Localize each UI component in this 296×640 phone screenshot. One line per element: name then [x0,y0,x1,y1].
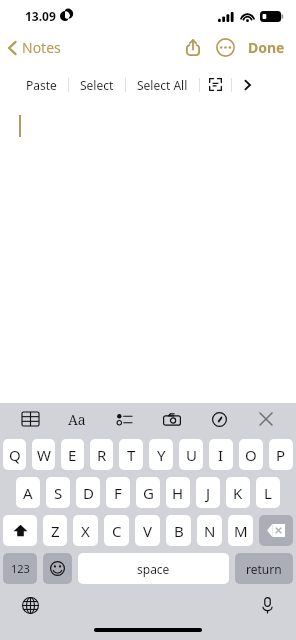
staticText: Select [80,77,114,93]
staticText: Q [9,445,21,465]
button[interactable]: E [61,439,84,470]
staticText: Notes [22,38,61,57]
button[interactable]: Done [243,35,296,60]
button[interactable]: Q [3,439,26,470]
staticText: 13.09 [25,8,56,24]
button[interactable]: R [90,439,113,470]
button[interactable]: Next keyboard [18,593,43,618]
button[interactable]: Emoji [43,553,72,584]
staticText: B [174,521,184,541]
staticText: W [37,445,51,465]
staticText: K [233,483,243,503]
button[interactable]: D [76,477,100,508]
staticText: J [206,483,211,503]
button[interactable]: space [78,553,229,584]
button[interactable]: Select All [126,71,199,98]
staticText: U [186,445,197,465]
button[interactable]: B [166,515,191,546]
button[interactable]: H [166,477,190,508]
staticText: E [68,445,77,465]
button[interactable]: Markup [202,404,236,434]
staticText: Z [51,521,60,541]
staticText: D [83,483,94,503]
button[interactable]: Close keyboard [249,404,283,434]
button[interactable]: Shift [3,515,37,546]
staticText: V [143,521,153,541]
button[interactable]: Scan text [200,71,231,98]
button[interactable]: I [209,439,233,470]
button[interactable]: P [269,439,293,470]
button[interactable]: S [46,477,70,508]
staticText: R [97,445,107,465]
button[interactable]: F [106,477,130,508]
staticText: N [204,521,216,541]
staticText: Aa [68,410,86,429]
button[interactable]: Z [43,515,67,546]
button[interactable]: Dictation [257,593,278,618]
button[interactable]: Share [178,36,208,59]
button[interactable]: return [235,553,293,584]
staticText: I [218,445,224,465]
button[interactable]: Table [13,404,47,434]
button[interactable]: More options [208,35,243,60]
button[interactable]: A [16,477,40,508]
staticText: S [54,483,63,503]
staticText: O [245,445,257,465]
staticText: P [276,445,286,465]
button[interactable]: Camera [155,404,189,434]
staticText: T [127,445,136,465]
button[interactable]: N [197,515,222,546]
button[interactable]: X [73,515,98,546]
staticText: Paste [26,77,57,93]
staticText: G [143,483,154,503]
button[interactable]: L [256,477,280,508]
staticText: M [234,521,248,541]
button[interactable]: G [136,477,160,508]
button[interactable]: V [135,515,160,546]
staticText: Y [157,445,166,465]
staticText: space [137,561,170,577]
staticText: X [81,521,90,541]
button[interactable]: W [32,439,55,470]
button[interactable]: J [196,477,220,508]
staticText: Select All [137,77,188,93]
button[interactable]: O [239,439,263,470]
button[interactable]: Notes [0,35,69,60]
staticText: H [172,483,184,503]
staticText: F [114,483,122,503]
button[interactable]: 123 [3,553,37,584]
button[interactable]: Y [149,439,173,470]
button[interactable]: T [119,439,143,470]
button[interactable]: Checklist [107,404,141,434]
button[interactable]: Paste [15,71,68,98]
button[interactable]: Delete [259,515,293,546]
staticText: L [264,483,272,503]
button[interactable]: More [232,71,263,98]
button[interactable]: C [104,515,129,546]
button[interactable]: Select [69,71,125,98]
button[interactable]: K [226,477,250,508]
button[interactable]: U [179,439,203,470]
button[interactable]: Format [60,404,94,434]
staticText: return [246,561,282,577]
staticText: Done [248,38,285,57]
staticText: C [112,521,122,541]
staticText: A [23,483,33,503]
staticText: 123 [11,561,30,576]
button[interactable]: M [228,515,253,546]
